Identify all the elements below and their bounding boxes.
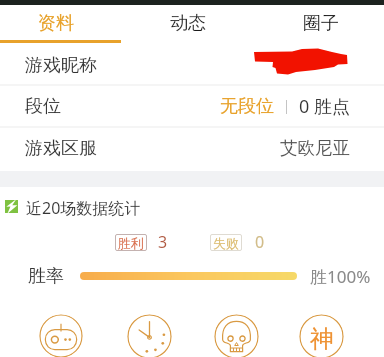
- button[interactable]: Robot: [39, 314, 83, 357]
- button[interactable]: Skull: [214, 314, 259, 357]
- button[interactable]: 段位: [0, 86, 384, 126]
- staticText: 胜100%: [310, 265, 371, 288]
- staticText: 3: [158, 231, 168, 253]
- staticText: 动态: [170, 12, 206, 35]
- staticText: 游戏区服: [25, 137, 97, 160]
- button[interactable]: 胜利: [115, 234, 147, 251]
- staticText: 资料: [38, 12, 74, 35]
- button[interactable]: 神: [299, 314, 344, 357]
- staticText: 失败: [213, 235, 239, 251]
- button[interactable]: 动态: [124, 4, 252, 42]
- staticText: 游戏昵称: [25, 54, 97, 77]
- staticText: 近20场数据统计: [26, 197, 141, 219]
- staticText: 艾欧尼亚: [280, 137, 350, 159]
- button[interactable]: 游戏昵称: [0, 45, 384, 85]
- staticText: 胜利: [118, 235, 144, 251]
- button[interactable]: 圈子: [257, 4, 384, 42]
- staticText: 圈子: [303, 12, 339, 35]
- staticText: 0 胜点: [299, 94, 350, 119]
- button[interactable]: 资料: [0, 4, 120, 42]
- staticText: 胜率: [28, 265, 64, 288]
- staticText: 无段位: [220, 95, 274, 118]
- button[interactable]: 失败: [210, 234, 242, 251]
- staticText: 0: [255, 231, 265, 253]
- button[interactable]: 游戏区服: [0, 128, 384, 168]
- staticText: 神: [310, 324, 334, 354]
- button[interactable]: Clock: [127, 314, 172, 357]
- staticText: 段位: [25, 95, 61, 118]
